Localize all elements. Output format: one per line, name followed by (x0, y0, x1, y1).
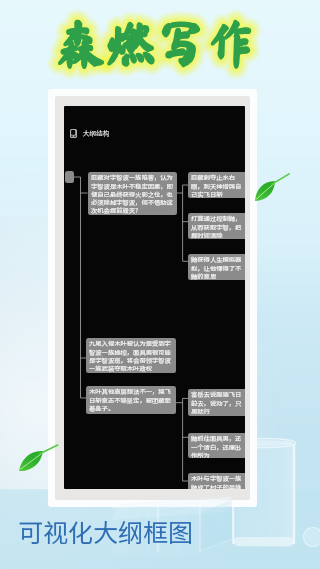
staticText: 忍藏剥夺止水右眼，刺天神增强自己实飞日斩 (191, 173, 245, 198)
staticText: 九尾入侵木叶被认为是受到宇智波一族操控，面具男很可能是宇智波斑，将会带领宇智波一… (89, 339, 175, 373)
staticText: 森燃写作 (56, 18, 256, 68)
button[interactable]: 忍藏对宇智波一族陷害，认为宇智波是木叶不稳定因素，即便自己最终获得火影之位，也必… (88, 172, 177, 215)
staticText: 鼬抓住面具男，还一个清白，还爆出作所为 (191, 434, 245, 458)
staticText: 可视化大纲框图 (18, 513, 194, 549)
staticText: 森燃写作 (56, 18, 256, 68)
button[interactable]: 忍藏剥夺止水右眼，刺天神增强自己实飞日斩 (188, 172, 245, 198)
staticText: 森燃写作 (56, 18, 256, 68)
other: Outline view (70, 129, 77, 138)
button[interactable]: 九尾入侵木叶被认为是受到宇智波一族操控，面具男很可能是宇智波斑，将会带领宇智波一… (86, 338, 176, 373)
staticText: 森燃写作 (56, 18, 256, 68)
button[interactable]: 木叶其他高层想法不一，猿飞日斩意志不够坚定，被团藏牵着鼻子。 (86, 386, 176, 414)
staticText: 森燃写作 (56, 18, 256, 68)
staticText: 富岳去说服猿飞日前去，说动了，只男就行 (191, 390, 245, 416)
staticText: 木叶与宇智波一族鼬成了村子的英雄 (191, 474, 245, 489)
button[interactable]: Outline view (70, 128, 110, 138)
staticText: 大纲结构 (83, 128, 110, 138)
button[interactable]: 富岳去说服猿飞日前去，说动了，只男就行 (188, 389, 245, 416)
button[interactable]: 鼬抓住面具男，还一个清白，还爆出作所为 (188, 433, 245, 458)
staticText: 鼬获得人生模拟器拟，让他懂得了不鼬的意思 (191, 255, 245, 280)
button[interactable]: 木叶与宇智波一族鼬成了村子的英雄 (188, 473, 245, 489)
staticText: 森燃写作 (56, 18, 256, 68)
staticText: 木叶其他高层想法不一，猿飞日斩意志不够坚定，被团藏牵着鼻子。 (89, 387, 175, 413)
staticText: 森燃写作 (56, 18, 256, 68)
button[interactable]: 打算通过控制鼬，从而获取宇智，把握时间清除 (188, 213, 245, 239)
button[interactable]: 鼬获得人生模拟器拟，让他懂得了不鼬的意思 (188, 254, 245, 280)
staticText: 森燃写作 (56, 18, 256, 68)
button[interactable]: Root node (65, 171, 74, 183)
staticText: 忍藏对宇智波一族陷害，认为宇智波是木叶不稳定因素，即便自己最终获得火影之位，也必… (91, 173, 176, 215)
staticText: 打算通过控制鼬，从而获取宇智，把握时间清除 (191, 214, 245, 239)
staticText: 森燃写作 (56, 18, 256, 68)
staticText: 森燃写作 (56, 18, 256, 68)
